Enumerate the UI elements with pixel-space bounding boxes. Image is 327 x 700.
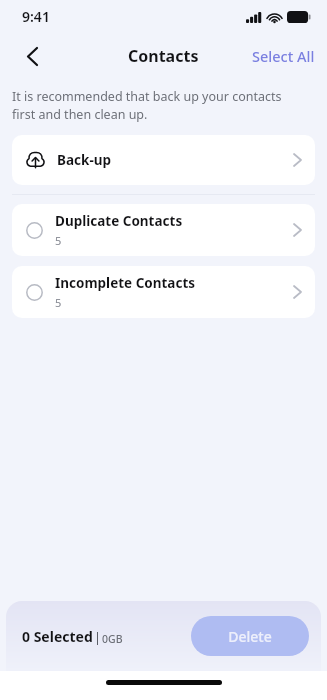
staticText: It is recommended that back up your cont… <box>12 88 307 123</box>
staticText: Contacts <box>128 45 199 67</box>
staticText: 5 <box>55 233 62 248</box>
button[interactable]: Select All <box>240 38 327 74</box>
button[interactable]: Back-up <box>12 135 315 185</box>
staticText: 5 <box>55 295 62 310</box>
staticText: Delete <box>228 627 272 646</box>
staticText: 0 Selected <box>22 627 93 646</box>
staticText: Duplicate Contacts <box>55 212 183 230</box>
button[interactable]: Incomplete Contacts <box>12 266 315 318</box>
button[interactable]: Delete <box>191 616 309 656</box>
staticText: Select All <box>252 46 315 66</box>
staticText: Incomplete Contacts <box>55 274 196 292</box>
button[interactable]: Back <box>12 36 52 76</box>
staticText: Back-up <box>57 151 112 169</box>
staticText: 0GB <box>102 632 123 646</box>
staticText: 9:41 <box>22 7 50 26</box>
button[interactable]: Duplicate Contacts <box>12 204 315 256</box>
